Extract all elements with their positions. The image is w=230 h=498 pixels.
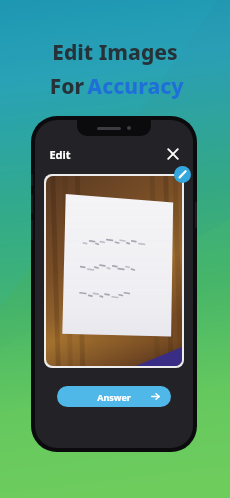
staticText: Edit Images <box>52 38 178 67</box>
button[interactable]: Edit photo <box>174 166 191 183</box>
staticText: Edit <box>49 147 71 162</box>
button[interactable]: Answer <box>57 386 171 407</box>
button[interactable]: Edit <box>47 145 73 164</box>
staticText: Answer <box>97 391 131 403</box>
staticText: Accuracy <box>87 72 184 101</box>
staticText: For <box>47 72 87 101</box>
button[interactable] <box>44 174 184 368</box>
button[interactable]: Close <box>163 144 183 164</box>
